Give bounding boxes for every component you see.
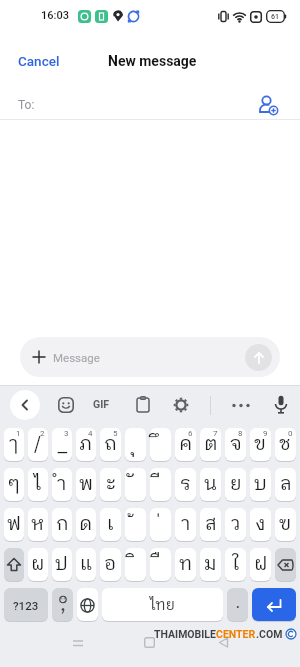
staticText: 9	[263, 429, 268, 438]
button[interactable]	[173, 397, 189, 413]
button[interactable]: ะ	[100, 468, 121, 502]
staticText: ม	[204, 549, 217, 580]
button[interactable]: ่	[150, 508, 171, 542]
staticText: ?123	[13, 599, 39, 612]
staticText: ่	[155, 509, 160, 540]
button[interactable]: ถ	[100, 428, 121, 462]
button[interactable]	[77, 588, 98, 622]
button[interactable]: แ	[76, 548, 96, 582]
staticText: ไทย	[150, 593, 175, 618]
button[interactable]: า	[175, 508, 196, 542]
button[interactable]	[58, 397, 74, 413]
button[interactable]: ท	[175, 548, 196, 582]
staticText: _	[57, 429, 68, 460]
staticText: 16:03	[41, 9, 69, 22]
staticText: ส	[205, 509, 217, 540]
button[interactable]: _	[52, 428, 72, 462]
button[interactable]: ไ	[28, 468, 48, 502]
button[interactable]	[10, 390, 40, 420]
staticText: 1	[16, 429, 21, 438]
button[interactable]: ช	[275, 428, 296, 462]
staticText: New message	[108, 53, 197, 69]
button[interactable]	[231, 403, 251, 408]
button[interactable]: ม	[200, 548, 221, 582]
button[interactable]	[274, 395, 288, 415]
staticText: ั	[130, 469, 135, 500]
staticText: To:	[18, 98, 35, 112]
button[interactable]: ั	[125, 468, 146, 502]
staticText: ้	[130, 509, 135, 540]
staticText: ื	[155, 549, 160, 580]
button[interactable]: ื	[150, 548, 171, 582]
staticText: ๅ	[9, 429, 19, 460]
staticText: .COM	[256, 628, 283, 640]
staticText: ผ	[31, 549, 45, 580]
button[interactable]: ำ	[52, 468, 72, 502]
button[interactable]: .	[227, 588, 248, 622]
button[interactable]	[4, 548, 24, 582]
staticText: ฟ	[7, 509, 22, 540]
button[interactable]: ฟ	[4, 508, 24, 542]
staticText: น	[204, 469, 218, 500]
button[interactable]: ้	[125, 508, 146, 542]
button[interactable]	[252, 588, 296, 622]
button[interactable]: Cancel	[18, 53, 60, 69]
button[interactable]: ค	[175, 428, 196, 462]
button[interactable]: ๆ	[4, 468, 24, 502]
staticText: 8	[238, 429, 243, 438]
button[interactable]: ส	[200, 508, 221, 542]
button[interactable]: ล	[275, 468, 296, 502]
staticText: ี	[155, 469, 160, 500]
button[interactable]: ภ	[76, 428, 96, 462]
button[interactable]: ุ	[125, 428, 146, 462]
button[interactable]: ไทย	[102, 588, 223, 622]
button[interactable]: ผ	[28, 548, 48, 582]
button[interactable]	[52, 588, 73, 622]
button[interactable]: ว	[225, 508, 246, 542]
button[interactable]: ิ	[125, 548, 146, 582]
button[interactable]: บ	[250, 468, 271, 502]
button[interactable]	[136, 396, 150, 413]
staticText: 61	[271, 13, 279, 21]
button[interactable]	[256, 93, 280, 117]
button[interactable]: ๅ	[4, 428, 24, 462]
staticText: ิ	[130, 549, 135, 580]
button[interactable]: ร	[175, 468, 196, 502]
button[interactable]: ข	[250, 428, 271, 462]
staticText: Message	[53, 351, 100, 364]
button[interactable]: ห	[28, 508, 48, 542]
staticText: ค	[179, 429, 193, 460]
button[interactable]: /	[28, 428, 48, 462]
staticText: 5	[113, 429, 118, 438]
button[interactable]: ฃ	[275, 508, 296, 542]
button[interactable]: อ	[100, 548, 121, 582]
button[interactable]: ด	[76, 508, 96, 542]
staticText: ร	[180, 469, 191, 500]
staticText: ใ	[232, 549, 240, 580]
button[interactable]: ก	[52, 508, 72, 542]
button[interactable]: ป	[52, 548, 72, 582]
button[interactable]: พ	[76, 468, 96, 502]
button[interactable]	[245, 344, 272, 371]
button[interactable]: ี	[150, 468, 171, 502]
staticText: ช	[279, 429, 292, 460]
staticText: ล	[280, 469, 292, 500]
button[interactable]: ต	[200, 428, 221, 462]
button[interactable]: ฝ	[250, 548, 271, 582]
button[interactable]: Message	[20, 337, 280, 377]
staticText: ห	[31, 509, 45, 540]
button[interactable]: ?123	[4, 588, 48, 622]
button[interactable]: ึ	[150, 428, 171, 462]
button[interactable]	[275, 548, 296, 582]
staticText: า	[181, 509, 191, 540]
button[interactable]: ง	[250, 508, 271, 542]
button[interactable]: GIF	[93, 398, 109, 410]
button[interactable]: น	[200, 468, 221, 502]
button[interactable]: ย	[225, 468, 246, 502]
button[interactable]: เ	[100, 508, 121, 542]
button[interactable]: ใ	[225, 548, 246, 582]
staticText: CENTER	[216, 628, 256, 640]
staticText: ฝ	[254, 549, 268, 580]
button[interactable]: จ	[225, 428, 246, 462]
staticText: ข	[254, 429, 267, 460]
